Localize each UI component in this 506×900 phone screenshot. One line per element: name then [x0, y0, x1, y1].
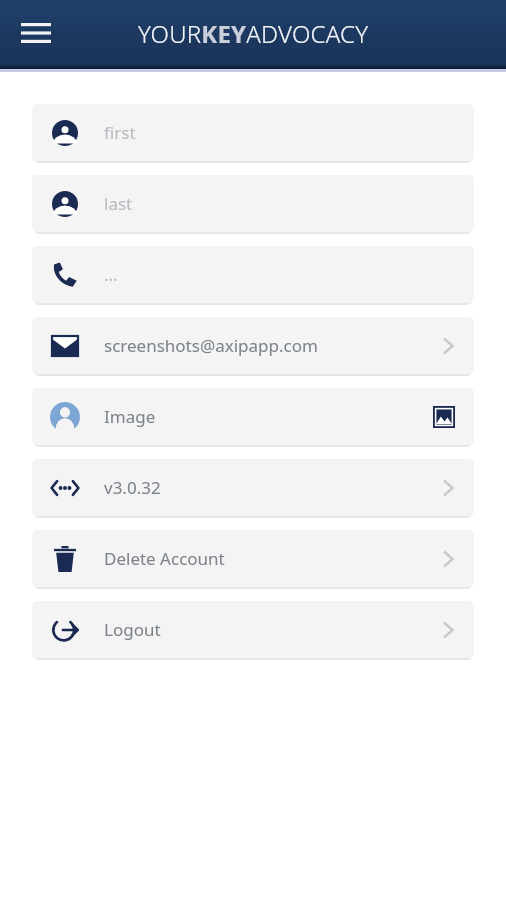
button[interactable]: First name: [32, 104, 474, 161]
button[interactable]: Menu: [14, 11, 58, 55]
button[interactable]: Phone: [32, 246, 474, 303]
button[interactable]: Version: [32, 459, 474, 516]
staticText: last: [104, 192, 456, 215]
button[interactable]: Logout: [32, 601, 474, 658]
staticText: YOURKEYADVOCACY: [138, 17, 369, 50]
staticText: v3.0.32: [104, 476, 440, 499]
button[interactable]: Email: [32, 317, 474, 374]
staticText: Image: [104, 405, 432, 428]
button[interactable]: Delete Account: [32, 530, 474, 587]
staticText: screenshots@axipapp.com: [104, 334, 440, 357]
staticText: Delete Account: [104, 547, 440, 570]
button[interactable]: Last name: [32, 175, 474, 232]
staticText: Logout: [104, 618, 440, 641]
button[interactable]: Image: [32, 388, 474, 445]
staticText: first: [104, 121, 456, 144]
